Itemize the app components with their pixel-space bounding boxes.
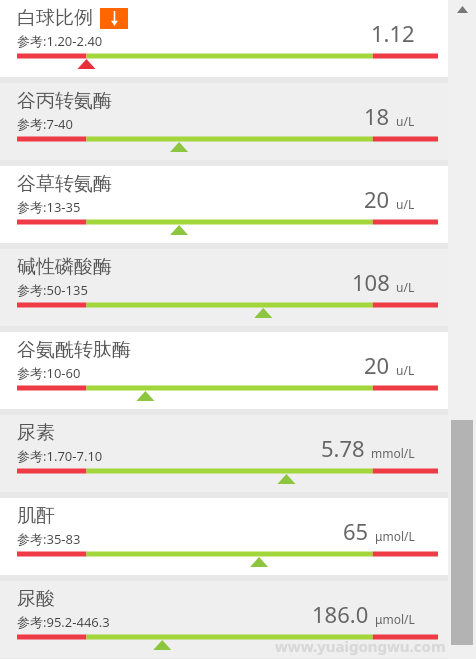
staticText: μmol/L — [375, 528, 415, 544]
staticText: 186.0 — [312, 599, 369, 629]
staticText: mmol/L — [371, 445, 415, 461]
staticText: 1.12 — [371, 18, 415, 48]
button[interactable]: 谷丙转氨酶 — [0, 83, 448, 160]
staticText: 参考:1.70-7.10 — [17, 447, 103, 465]
staticText: u/L — [396, 113, 415, 129]
staticText: u/L — [396, 279, 415, 295]
button[interactable]: Scroll up — [448, 0, 476, 18]
staticText: u/L — [396, 362, 415, 378]
staticText: 肌酐 — [17, 504, 55, 528]
button[interactable]: 谷草转氨酶 — [0, 166, 448, 243]
staticText: 尿酸 — [17, 587, 55, 611]
staticText: 参考:1.20-2.40 — [17, 32, 103, 50]
button[interactable]: 尿酸 — [0, 581, 448, 658]
staticText: 参考:7-40 — [17, 115, 73, 133]
button[interactable]: 肌酐 — [0, 498, 448, 575]
staticText: 谷丙转氨酶 — [17, 89, 112, 113]
staticText: 18 — [364, 101, 390, 131]
staticText: 20 — [364, 350, 390, 380]
other: Below reference range — [100, 8, 128, 29]
staticText: 参考:10-60 — [17, 364, 81, 382]
button[interactable]: 碱性磷酸酶 — [0, 249, 448, 326]
staticText: 尿素 — [17, 421, 55, 445]
staticText: 参考:50-135 — [17, 281, 88, 299]
staticText: u/L — [396, 196, 415, 212]
staticText: 65 — [343, 516, 369, 546]
staticText: 5.78 — [321, 433, 365, 463]
button[interactable]: 尿素 — [0, 415, 448, 492]
staticText: 参考:13-35 — [17, 198, 81, 216]
staticText: 谷草转氨酶 — [17, 172, 112, 196]
staticText: μmol/L — [375, 611, 415, 627]
staticText: 碱性磷酸酶 — [17, 255, 112, 279]
staticText: 参考:95.2-446.3 — [17, 613, 110, 631]
button[interactable]: 谷氨酰转肽酶 — [0, 332, 448, 409]
staticText: 白球比例 — [17, 6, 93, 30]
staticText: 谷氨酰转肽酶 — [17, 338, 131, 362]
staticText: 参考:35-83 — [17, 530, 81, 548]
staticText: www.yuaigongwu.com — [275, 636, 446, 656]
button[interactable]: 白球比例 — [0, 0, 448, 77]
staticText: 20 — [364, 184, 390, 214]
staticText: 108 — [352, 267, 390, 297]
